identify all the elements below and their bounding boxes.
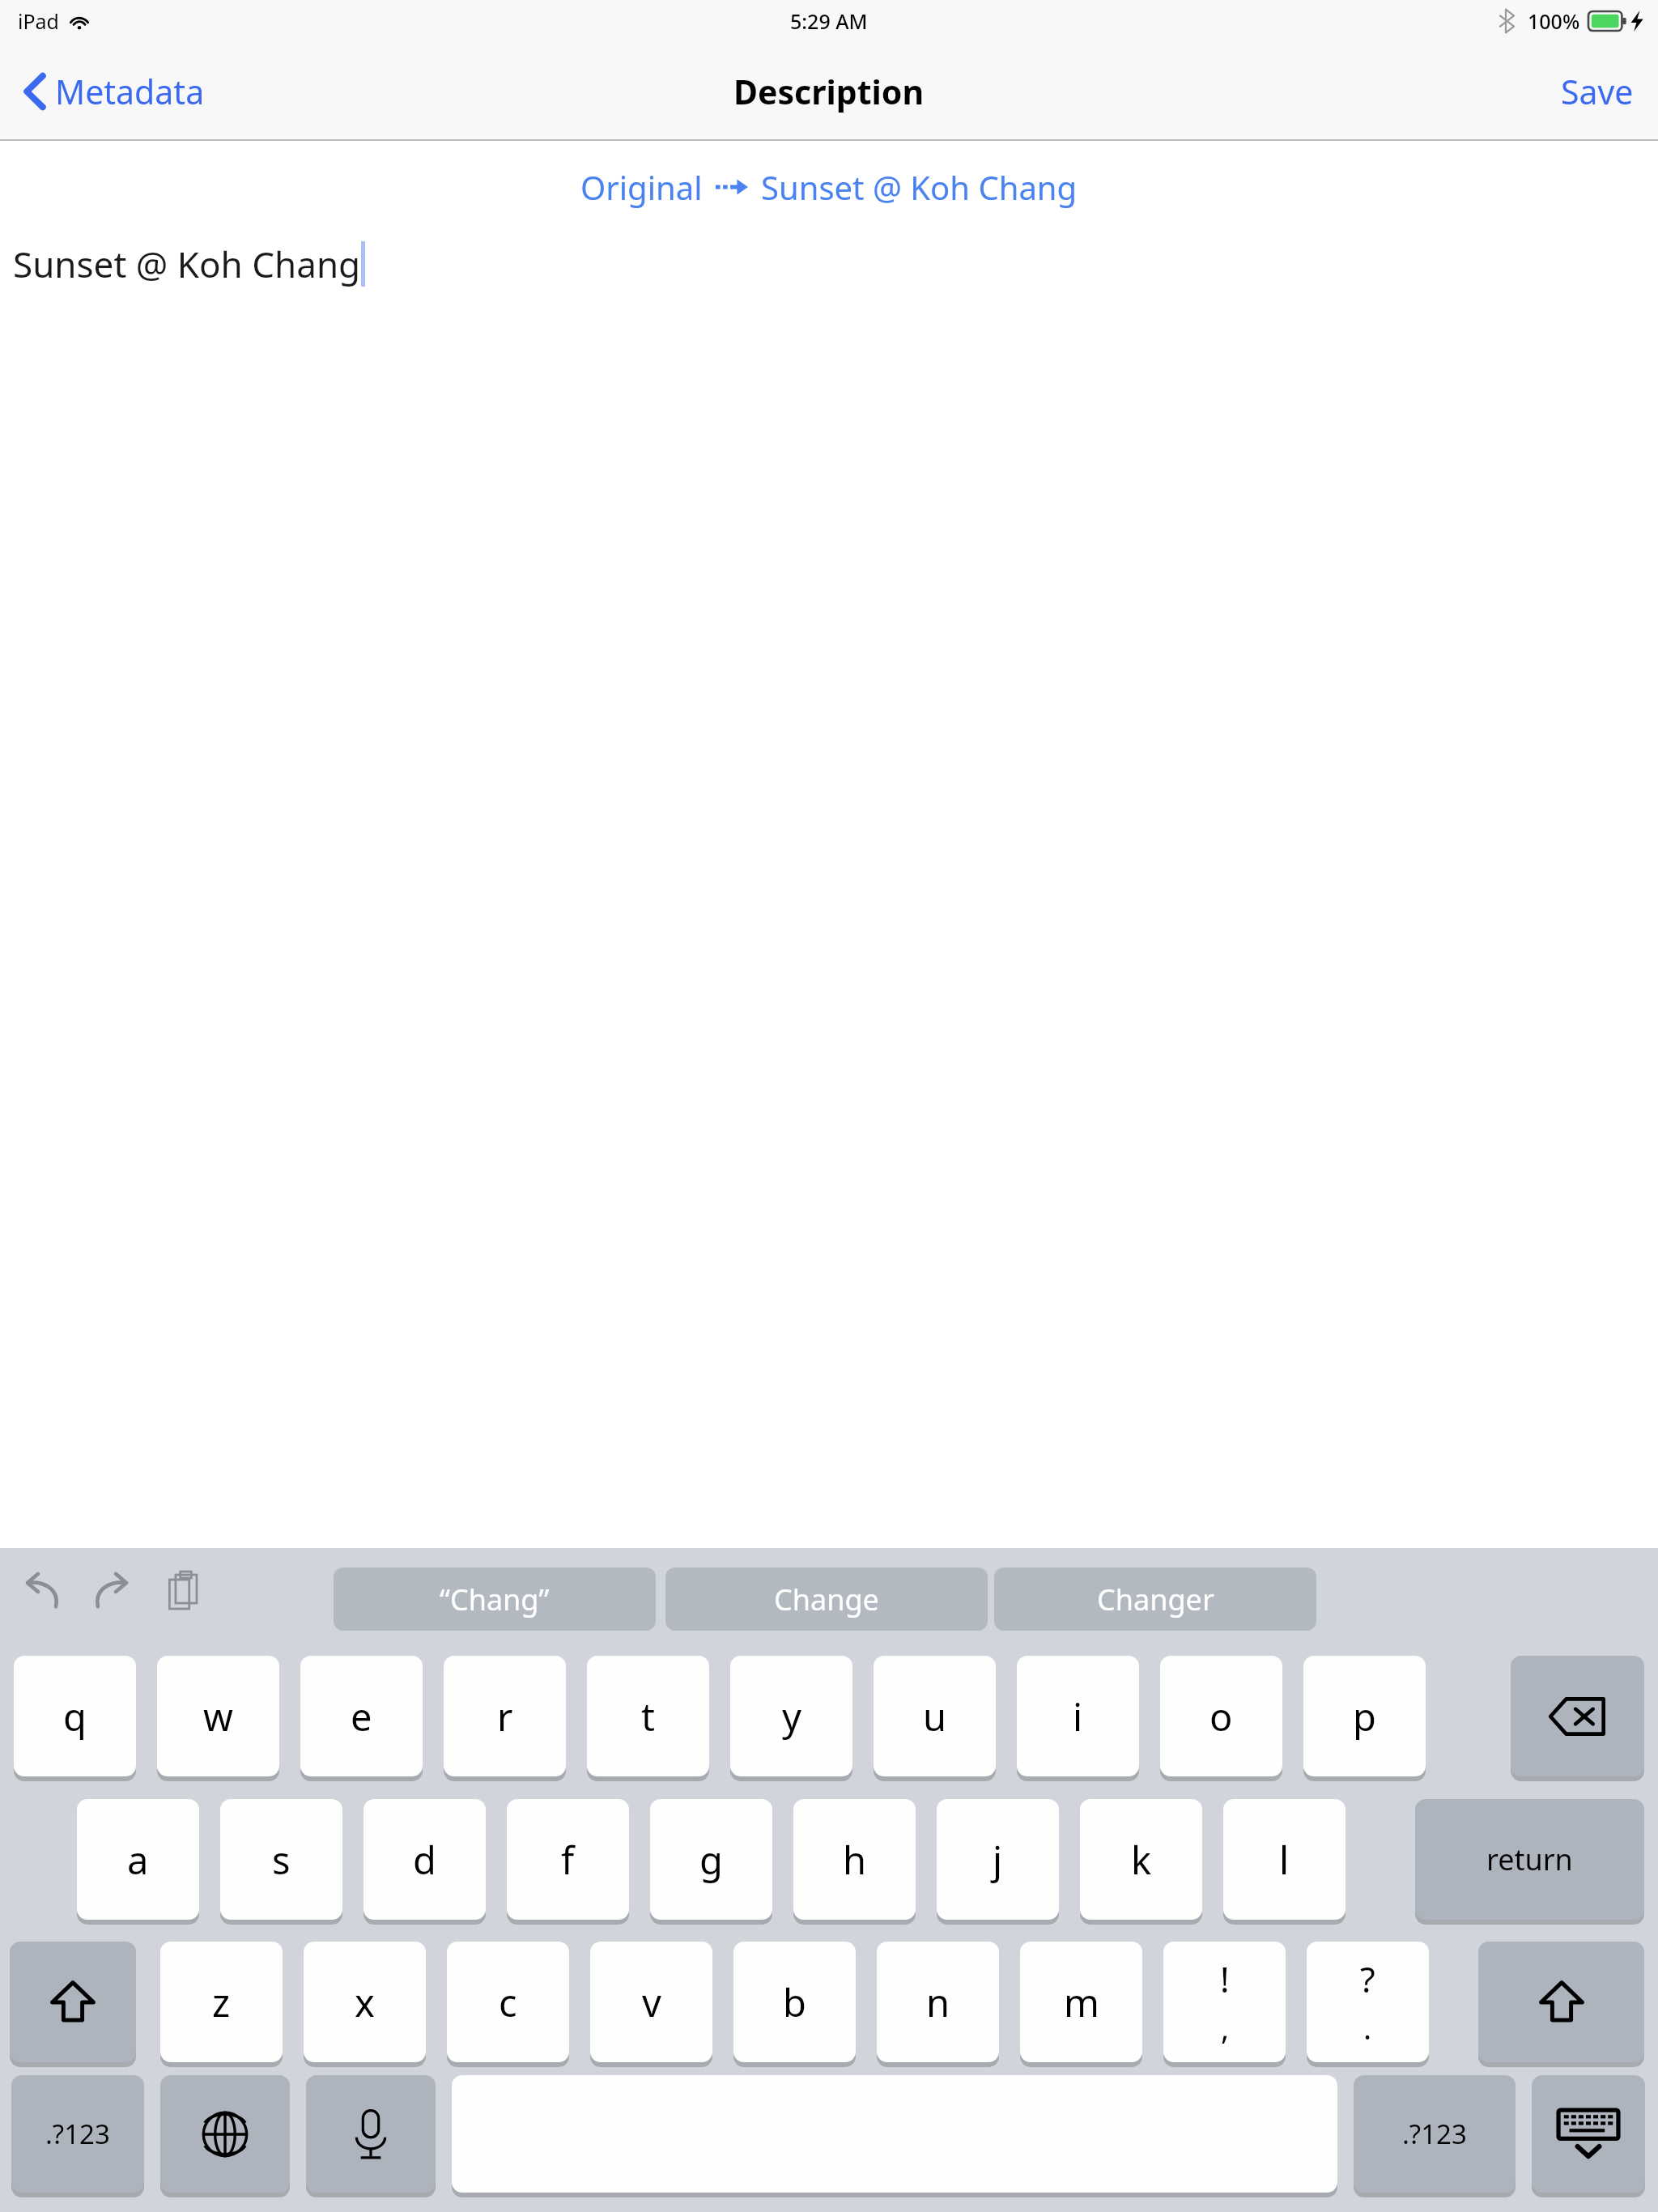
staticText: “Chang” bbox=[440, 1580, 550, 1619]
staticText: j bbox=[993, 1834, 1003, 1886]
staticText: t bbox=[641, 1691, 655, 1742]
button[interactable]: b bbox=[733, 1942, 856, 2065]
staticText: w bbox=[203, 1691, 233, 1742]
button[interactable]: “Chang” bbox=[334, 1568, 656, 1631]
button[interactable]: q bbox=[14, 1656, 136, 1779]
staticText: l bbox=[1279, 1834, 1290, 1886]
button[interactable]: j bbox=[937, 1799, 1059, 1922]
button[interactable]: s bbox=[220, 1799, 342, 1922]
staticText: Sunset @ Koh Chang bbox=[13, 240, 361, 288]
button[interactable]: Next keyboard bbox=[160, 2075, 290, 2195]
staticText: e bbox=[351, 1691, 372, 1742]
staticText: z bbox=[212, 1976, 231, 2028]
button[interactable]: e bbox=[300, 1656, 423, 1779]
staticText: Original bbox=[580, 165, 703, 209]
staticText: g bbox=[699, 1834, 723, 1886]
button[interactable]: Backspace bbox=[1511, 1656, 1644, 1779]
button[interactable]: Changer bbox=[994, 1568, 1316, 1631]
staticText: Description bbox=[733, 69, 925, 114]
staticText: n bbox=[926, 1976, 950, 2028]
button[interactable]: x bbox=[304, 1942, 426, 2065]
button[interactable]: u bbox=[874, 1656, 996, 1779]
staticText: ! bbox=[1220, 1955, 1230, 2003]
staticText: d bbox=[413, 1834, 436, 1886]
button[interactable]: Shift bbox=[10, 1942, 136, 2065]
button[interactable]: Hide keyboard bbox=[1532, 2075, 1645, 2195]
staticText: .?123 bbox=[45, 2116, 110, 2152]
staticText: f bbox=[561, 1834, 575, 1886]
button[interactable]: p bbox=[1303, 1656, 1426, 1779]
staticText: b bbox=[783, 1976, 806, 2028]
button[interactable]: Sunset @ Koh Chang bbox=[0, 240, 1658, 288]
button[interactable]: n bbox=[877, 1942, 999, 2065]
staticText: , bbox=[1221, 2006, 1230, 2048]
button[interactable]: t bbox=[587, 1656, 709, 1779]
staticText: m bbox=[1064, 1976, 1099, 2028]
staticText: 100% bbox=[1528, 7, 1580, 35]
button[interactable]: y bbox=[730, 1656, 852, 1779]
button[interactable]: Dictation bbox=[306, 2075, 436, 2195]
staticText: q bbox=[63, 1691, 87, 1742]
button[interactable]: l bbox=[1223, 1799, 1346, 1922]
button[interactable]: v bbox=[590, 1942, 712, 2065]
staticText: r bbox=[497, 1691, 513, 1742]
staticText: Save bbox=[1561, 69, 1634, 114]
staticText: i bbox=[1073, 1691, 1083, 1742]
staticText: Metadata bbox=[55, 69, 205, 114]
button[interactable]: f bbox=[507, 1799, 629, 1922]
button[interactable]: Redo bbox=[87, 1566, 138, 1616]
button[interactable]: Undo bbox=[16, 1566, 66, 1616]
staticText: p bbox=[1353, 1691, 1376, 1742]
staticText: h bbox=[843, 1834, 867, 1886]
staticText: ? bbox=[1360, 1955, 1375, 2003]
staticText: Change bbox=[774, 1580, 879, 1619]
staticText: Sunset @ Koh Chang bbox=[761, 165, 1078, 209]
staticText: c bbox=[499, 1976, 517, 2028]
button[interactable]: k bbox=[1080, 1799, 1202, 1922]
button[interactable]: .?123 bbox=[11, 2075, 144, 2195]
staticText: u bbox=[923, 1691, 947, 1742]
button[interactable]: Metadata bbox=[0, 42, 224, 141]
button[interactable]: g bbox=[650, 1799, 772, 1922]
button[interactable]: w bbox=[157, 1656, 279, 1779]
staticText: iPad bbox=[18, 7, 59, 35]
button[interactable]: space bbox=[452, 2075, 1337, 2195]
staticText: x bbox=[355, 1976, 375, 2028]
button[interactable]: r bbox=[444, 1656, 566, 1779]
staticText: 5:29 AM bbox=[790, 7, 868, 35]
button[interactable]: z bbox=[160, 1942, 283, 2065]
button[interactable]: o bbox=[1160, 1656, 1282, 1779]
staticText: Changer bbox=[1097, 1580, 1214, 1619]
button[interactable]: h bbox=[793, 1799, 916, 1922]
staticText: o bbox=[1209, 1691, 1233, 1742]
button[interactable]: return bbox=[1415, 1799, 1644, 1922]
button[interactable]: Original bbox=[0, 165, 1658, 209]
button[interactable]: ! bbox=[1163, 1942, 1286, 2065]
button[interactable]: Save bbox=[1537, 42, 1658, 141]
button[interactable]: Shift bbox=[1478, 1942, 1644, 2065]
button[interactable]: d bbox=[363, 1799, 486, 1922]
button[interactable]: c bbox=[447, 1942, 569, 2065]
button[interactable]: Change bbox=[665, 1568, 988, 1631]
staticText: s bbox=[272, 1834, 291, 1886]
button[interactable]: ? bbox=[1307, 1942, 1429, 2065]
staticText: a bbox=[127, 1834, 149, 1886]
button[interactable]: m bbox=[1020, 1942, 1142, 2065]
button[interactable]: a bbox=[77, 1799, 199, 1922]
staticText: return bbox=[1486, 1840, 1573, 1879]
button[interactable]: .?123 bbox=[1354, 2075, 1516, 2195]
button[interactable]: i bbox=[1017, 1656, 1139, 1779]
staticText: . bbox=[1363, 2006, 1372, 2048]
staticText: k bbox=[1131, 1834, 1152, 1886]
staticText: .?123 bbox=[1402, 2116, 1467, 2152]
button[interactable]: Paste bbox=[159, 1566, 209, 1616]
staticText: y bbox=[782, 1691, 801, 1742]
staticText: v bbox=[642, 1976, 661, 2028]
